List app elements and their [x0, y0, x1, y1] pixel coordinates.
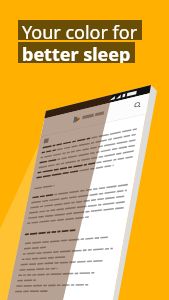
staticText: better sleep [22, 42, 131, 63]
staticText: Your color for [22, 20, 138, 40]
